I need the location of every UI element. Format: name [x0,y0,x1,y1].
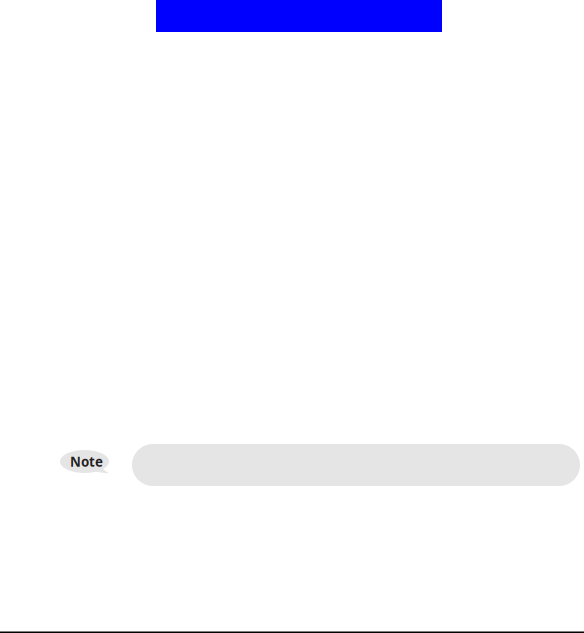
button[interactable]: Note field [132,444,580,486]
staticText: Note [70,453,103,470]
